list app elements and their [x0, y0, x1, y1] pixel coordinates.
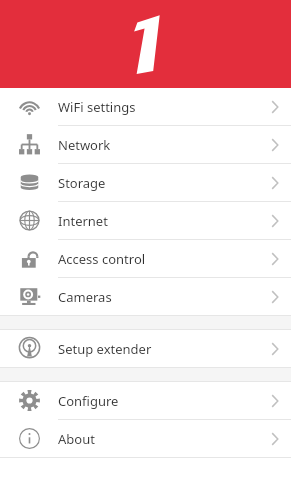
- staticText: About: [58, 430, 259, 448]
- button[interactable]: Network: [0, 126, 291, 163]
- staticText: Network: [58, 136, 259, 154]
- button[interactable]: Configure: [0, 382, 291, 419]
- staticText: WiFi settings: [58, 98, 259, 116]
- staticText: Configure: [58, 392, 259, 410]
- button[interactable]: About: [0, 420, 291, 457]
- button[interactable]: Storage: [0, 164, 291, 201]
- staticText: Access control: [58, 250, 259, 268]
- staticText: Internet: [58, 212, 259, 230]
- button[interactable]: WiFi settings: [0, 88, 291, 125]
- button[interactable]: Setup extender: [0, 330, 291, 367]
- button[interactable]: Internet: [0, 202, 291, 239]
- staticText: Setup extender: [58, 340, 259, 358]
- staticText: Storage: [58, 174, 259, 192]
- staticText: Cameras: [58, 288, 259, 306]
- button[interactable]: Access control: [0, 240, 291, 277]
- button[interactable]: Cameras: [0, 278, 291, 315]
